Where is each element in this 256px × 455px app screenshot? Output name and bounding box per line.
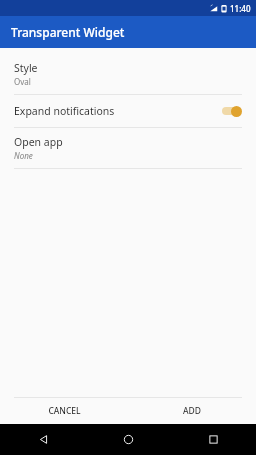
button[interactable]: Back: [23, 424, 63, 455]
staticText: ADD: [183, 405, 201, 417]
button[interactable]: Recent apps: [193, 424, 233, 455]
button[interactable]: CANCEL: [0, 398, 128, 424]
button[interactable]: Home: [108, 424, 148, 455]
staticText: Open app: [14, 135, 63, 149]
staticText: CANCEL: [48, 405, 81, 417]
button[interactable]: ADD: [128, 398, 256, 424]
staticText: Oval: [14, 76, 31, 87]
staticText: Style: [14, 61, 38, 75]
button[interactable]: Open app: [0, 128, 256, 168]
staticText: Transparent Widget: [11, 24, 125, 40]
staticText: 11:40: [230, 3, 251, 14]
button[interactable]: Expand notifications: [0, 95, 256, 127]
staticText: Expand notifications: [14, 104, 220, 118]
staticText: None: [14, 150, 33, 161]
button[interactable]: Style: [0, 54, 256, 94]
